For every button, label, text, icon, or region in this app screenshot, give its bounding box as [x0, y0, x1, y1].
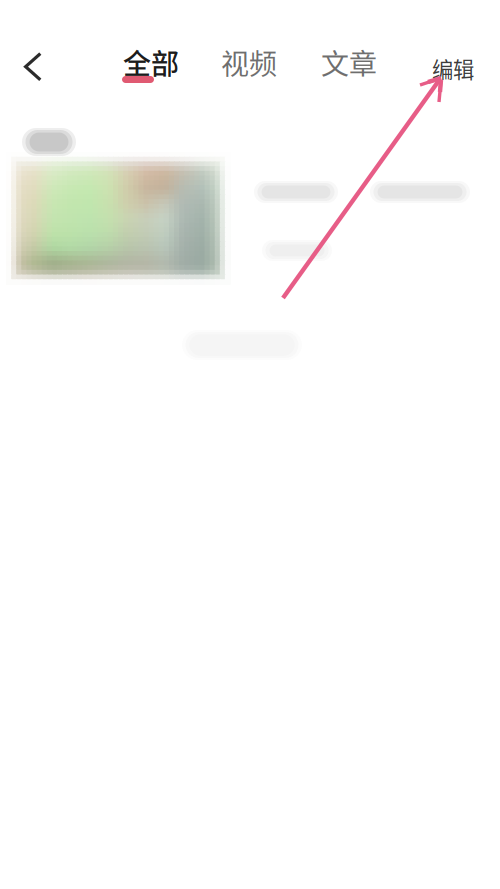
staticText: 编辑 — [432, 53, 474, 84]
button[interactable]: 编辑 — [432, 53, 474, 84]
staticText: 文章 — [321, 42, 377, 82]
staticText: 全部 — [123, 42, 179, 82]
button[interactable]: 视频 — [221, 42, 277, 82]
button[interactable]: Back — [10, 44, 56, 90]
button[interactable]: 全部 — [123, 42, 181, 90]
staticText: 视频 — [221, 42, 277, 82]
button[interactable]: 文章 — [321, 42, 377, 82]
